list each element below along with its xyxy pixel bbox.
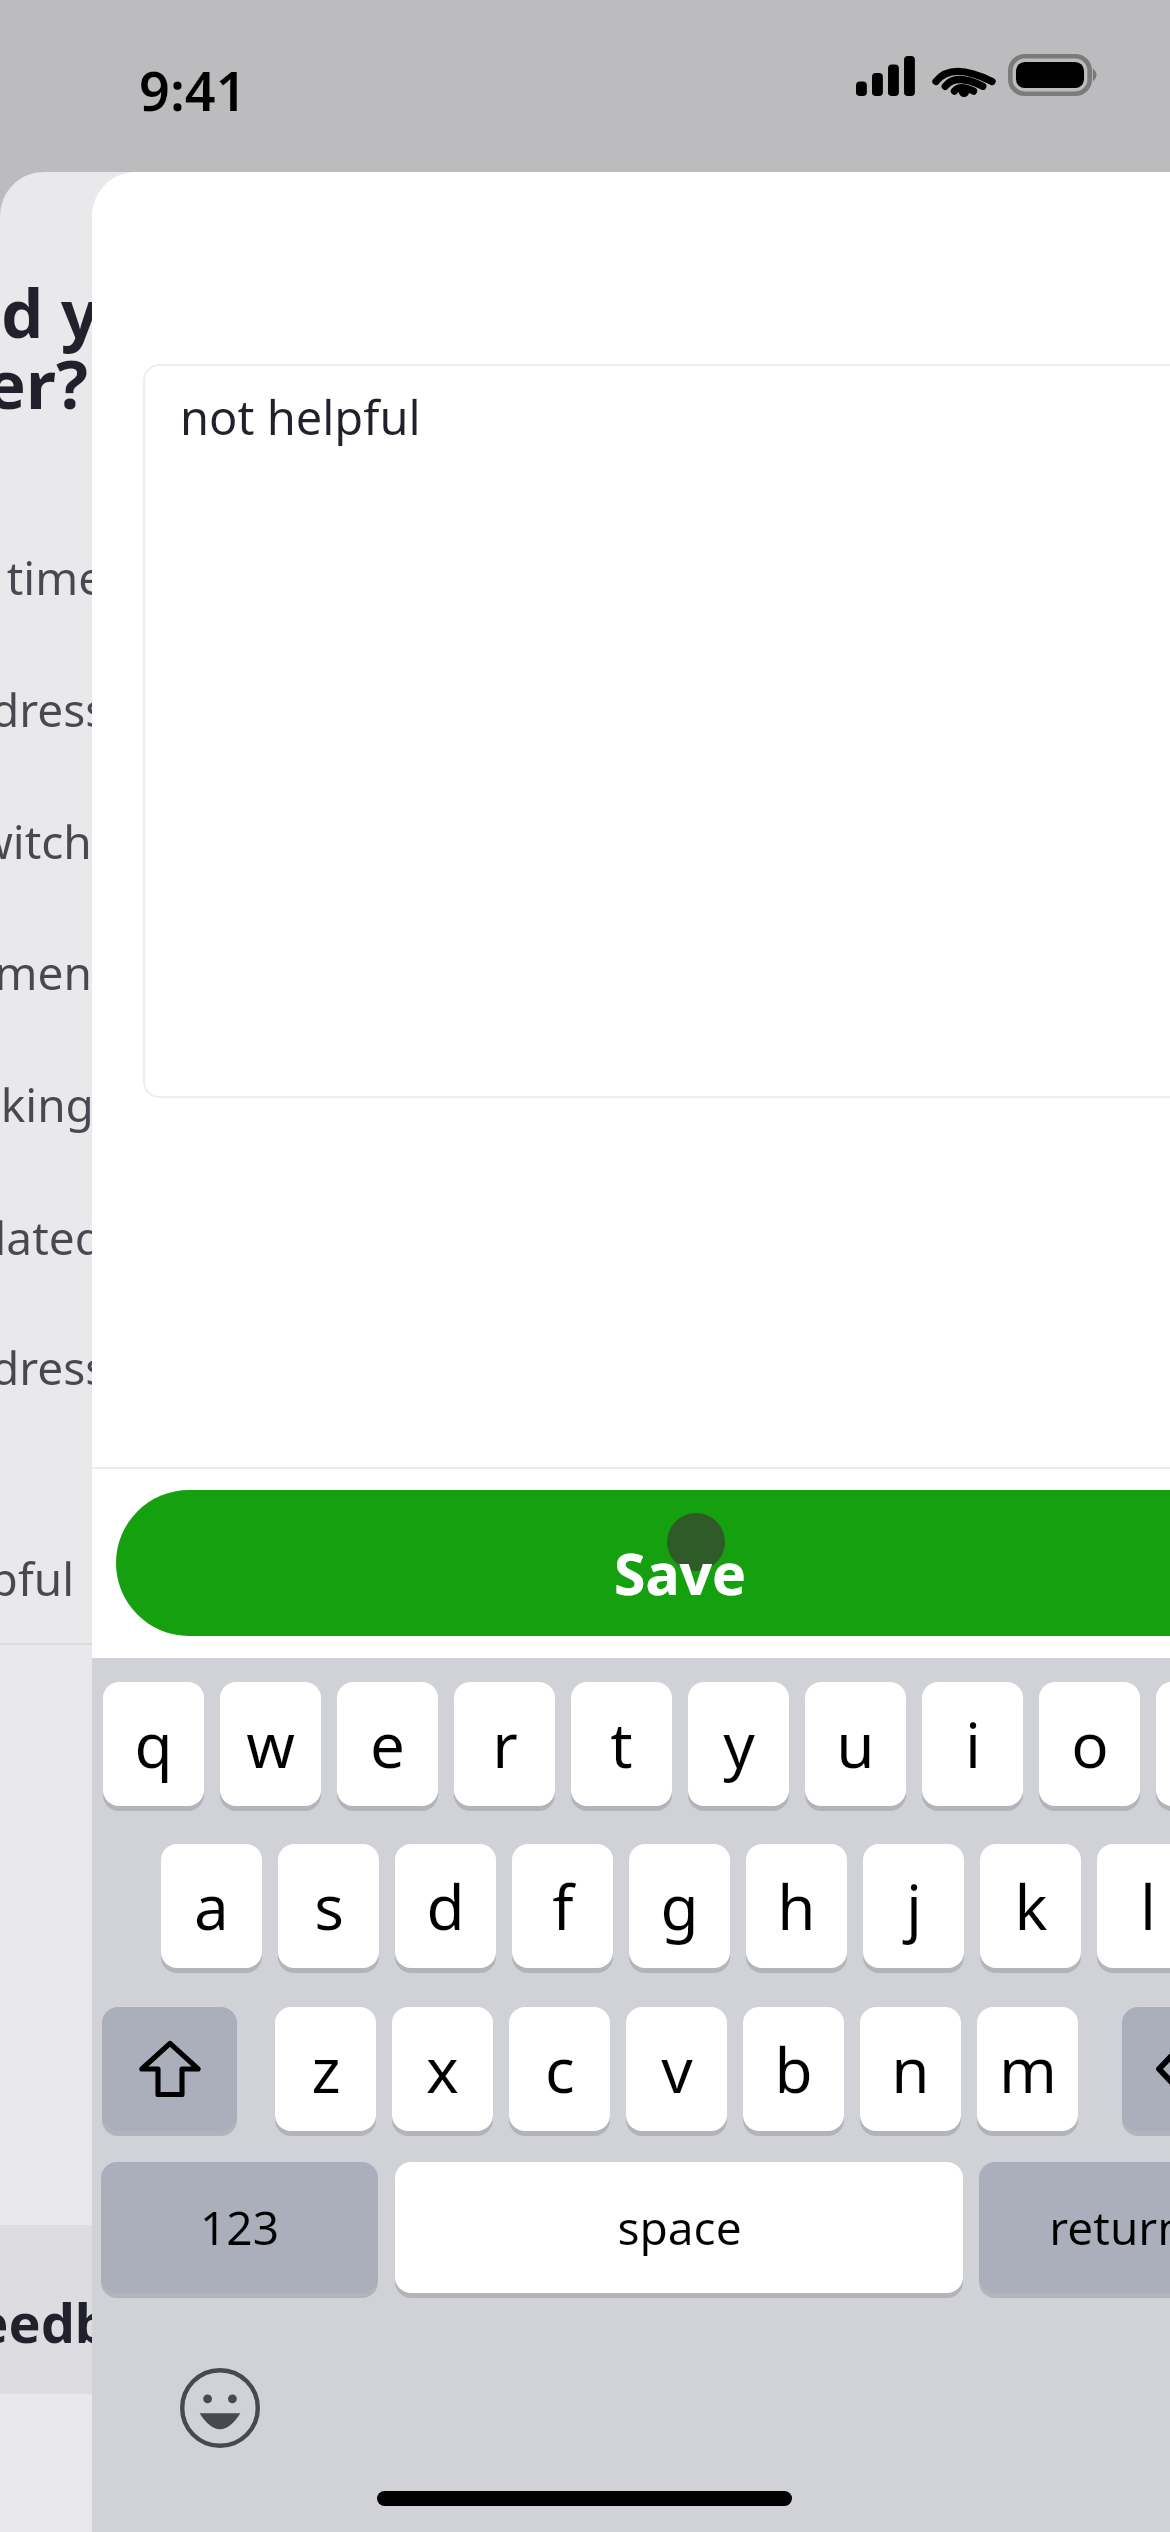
staticText: l [1140,1864,1156,1948]
button[interactable]: f [512,1844,613,1968]
button[interactable]: m [977,2007,1078,2131]
staticText: w [246,1702,295,1786]
button[interactable]: i [922,1682,1023,1806]
staticText: u [836,1702,875,1786]
staticText: t [610,1702,633,1786]
button[interactable]: g [629,1844,730,1968]
button[interactable]: z [275,2007,376,2131]
staticText: v [661,2027,693,2111]
staticText: g [660,1864,699,1948]
button[interactable]: k [980,1844,1081,1968]
staticText: n [891,2027,930,2111]
staticText: m [999,2027,1057,2111]
button[interactable] [116,1490,1170,1636]
staticText: a [194,1864,229,1948]
staticText: Not updated [0,1206,104,1269]
button[interactable]: x [392,2007,493,2131]
button[interactable]: b [743,2007,844,2131]
button[interactable]: w [220,1682,321,1806]
staticText: f [552,1864,574,1948]
staticText: y [723,1702,755,1786]
staticText: j [906,1864,922,1948]
other: Wi-Fi [936,54,992,96]
staticText: s [314,1864,344,1948]
other: Cellular signal [856,56,918,96]
staticText: x [426,2027,459,2111]
staticText: c [545,2027,575,2111]
button[interactable]: l [1097,1844,1170,1968]
button[interactable]: q [103,1682,204,1806]
staticText: space [617,2196,742,2259]
staticText: e [370,1702,405,1786]
button[interactable]: h [746,1844,847,1968]
button[interactable]: s [278,1844,379,1968]
button[interactable]: p [1156,1682,1170,1806]
staticText: q [134,1702,173,1786]
staticText: 123 [200,2196,279,2259]
staticText: Wrong address [0,678,108,741]
button[interactable]: r [454,1682,555,1806]
button[interactable]: d [395,1844,496,1968]
button[interactable]: space [395,2162,963,2293]
staticText: Slow response time [0,546,105,609]
button[interactable]: Backspace [1122,2007,1170,2131]
button[interactable]: j [863,1844,964,1968]
button[interactable]: 123 [101,2162,378,2293]
button[interactable]: Emoji [180,2368,260,2448]
staticText: Send feedback [0,2285,203,2359]
button[interactable] [143,364,1170,1098]
button[interactable]: n [860,2007,961,2131]
button[interactable]: Shift [102,2007,237,2131]
staticText: h [777,1864,816,1948]
button[interactable]: v [626,2007,727,2131]
staticText: not helpful [180,385,421,449]
staticText: Wrong payment [0,941,109,1004]
other: Battery [1008,54,1092,96]
staticText: o [1071,1702,1109,1786]
button[interactable]: return [979,2162,1170,2293]
staticText: Hard to switch [0,810,92,873]
staticText: feel about this answer? [0,337,89,428]
staticText: Too long taking [0,1073,94,1136]
button[interactable]: a [161,1844,262,1968]
staticText: How did you [0,266,185,357]
button[interactable]: o [1039,1682,1140,1806]
staticText: Wrong address [0,1336,108,1399]
staticText: z [311,2027,341,2111]
staticText: Save [614,1534,747,1612]
staticText: k [1014,1864,1048,1948]
staticText: Not helpful [0,1547,75,1610]
button[interactable]: c [509,2007,610,2131]
staticText: return [1049,2196,1170,2259]
staticText: 9:41 [139,53,247,127]
button[interactable]: e [337,1682,438,1806]
staticText: r [492,1702,518,1786]
button[interactable]: y [688,1682,789,1806]
staticText: i [965,1702,981,1786]
button[interactable]: u [805,1682,906,1806]
button[interactable]: t [571,1682,672,1806]
staticText: b [774,2027,813,2111]
staticText: d [426,1864,465,1948]
